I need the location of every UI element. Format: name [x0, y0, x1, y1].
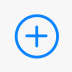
button[interactable]: Add — [0, 0, 72, 72]
